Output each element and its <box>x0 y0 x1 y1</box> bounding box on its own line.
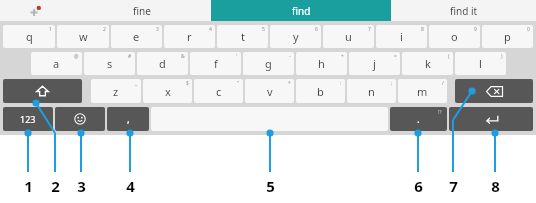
staticText: + <box>341 53 344 60</box>
staticText: c <box>216 84 222 99</box>
staticText: : <box>340 80 342 87</box>
staticText: * <box>288 80 291 87</box>
staticText: " <box>237 80 240 87</box>
staticText: 5 <box>266 176 275 196</box>
staticText: 7 <box>368 26 371 33</box>
button[interactable]: o <box>429 25 480 48</box>
staticText: u <box>345 29 352 44</box>
staticText: 2 <box>51 176 60 196</box>
button[interactable]: Enter <box>449 107 533 131</box>
staticText: i <box>400 29 403 44</box>
button[interactable]: i <box>376 25 427 48</box>
staticText: 3 <box>156 26 159 33</box>
staticText: k <box>425 56 431 71</box>
button[interactable]: u <box>323 25 374 48</box>
staticText: 4 <box>126 176 135 196</box>
staticText: d <box>159 56 166 71</box>
button[interactable]: l <box>455 52 506 75</box>
button[interactable]: v <box>245 79 294 103</box>
staticText: find <box>292 4 311 18</box>
staticText: 1 <box>24 176 33 196</box>
button[interactable]: b <box>296 79 345 103</box>
button[interactable]: find it <box>391 0 536 21</box>
staticText: !? <box>438 109 442 116</box>
staticText: 9 <box>474 26 477 33</box>
staticText: = <box>394 53 397 60</box>
button[interactable]: g <box>243 52 294 75</box>
button[interactable]: s <box>84 52 135 75</box>
staticText: s <box>107 56 113 71</box>
button[interactable]: j <box>349 52 400 75</box>
staticText: b <box>317 84 324 99</box>
staticText: 3 <box>77 176 86 196</box>
button[interactable]: d <box>137 52 188 75</box>
button[interactable]: Shift <box>3 79 82 103</box>
staticText: _ <box>135 80 138 87</box>
button[interactable]: w <box>57 25 109 48</box>
staticText: n <box>368 84 375 99</box>
button[interactable]: m <box>398 79 447 103</box>
staticText: t <box>241 29 245 44</box>
button[interactable]: fine <box>72 0 211 21</box>
staticText: a <box>53 56 60 71</box>
staticText: find it <box>450 4 478 18</box>
staticText: 123 <box>20 113 36 125</box>
staticText: 1 <box>49 26 52 33</box>
staticText: # <box>128 53 132 60</box>
staticText: x <box>165 84 171 99</box>
button[interactable]: p <box>482 25 533 48</box>
button[interactable]: f <box>190 52 241 75</box>
staticText: w <box>79 29 88 44</box>
staticText: , <box>127 112 130 126</box>
button[interactable]: z <box>91 79 141 103</box>
button[interactable]: find <box>211 0 391 21</box>
staticText: 8 <box>421 26 424 33</box>
staticText: 0 <box>527 26 530 33</box>
staticText: 6 <box>315 26 318 33</box>
staticText: 2 <box>103 26 106 33</box>
staticText: g <box>265 56 272 71</box>
button[interactable]: y <box>270 25 321 48</box>
button[interactable]: h <box>296 52 347 75</box>
staticText: ) <box>501 53 503 60</box>
staticText: / <box>442 80 444 87</box>
button[interactable]: Backspace <box>455 79 533 103</box>
staticText: q <box>26 29 33 44</box>
button[interactable]: c <box>194 79 243 103</box>
staticText: y <box>293 29 299 44</box>
staticText: 4 <box>209 26 212 33</box>
staticText: ; <box>391 80 393 87</box>
staticText: $ <box>186 80 189 87</box>
staticText: 5 <box>262 26 265 33</box>
button[interactable]: t <box>217 25 268 48</box>
staticText: m <box>417 84 428 99</box>
staticText: . <box>417 112 420 126</box>
button[interactable]: Space <box>151 107 388 131</box>
staticText: - <box>289 53 291 60</box>
staticText: ( <box>448 53 450 60</box>
button[interactable]: k <box>402 52 453 75</box>
button[interactable]: e <box>111 25 162 48</box>
staticText: e <box>133 29 140 44</box>
staticText: fine <box>133 4 151 18</box>
button[interactable]: 123 <box>3 107 53 131</box>
button[interactable]: Period <box>390 107 447 131</box>
staticText: @ <box>74 53 79 60</box>
staticText: 8 <box>491 176 500 196</box>
staticText: j <box>373 56 376 71</box>
button[interactable]: n <box>347 79 396 103</box>
button[interactable]: r <box>164 25 215 48</box>
staticText: p <box>504 29 511 44</box>
staticText: z <box>113 84 119 99</box>
staticText: o <box>451 29 458 44</box>
staticText: 6 <box>414 176 423 196</box>
staticText: r <box>187 29 192 44</box>
staticText: v <box>267 84 273 99</box>
button[interactable]: q <box>3 25 55 48</box>
staticText: 7 <box>449 176 458 196</box>
button[interactable]: Comma <box>107 107 149 131</box>
button[interactable]: x <box>143 79 192 103</box>
staticText: ' <box>236 53 238 60</box>
button[interactable]: a <box>31 52 82 75</box>
button[interactable]: Emoji <box>55 107 105 131</box>
